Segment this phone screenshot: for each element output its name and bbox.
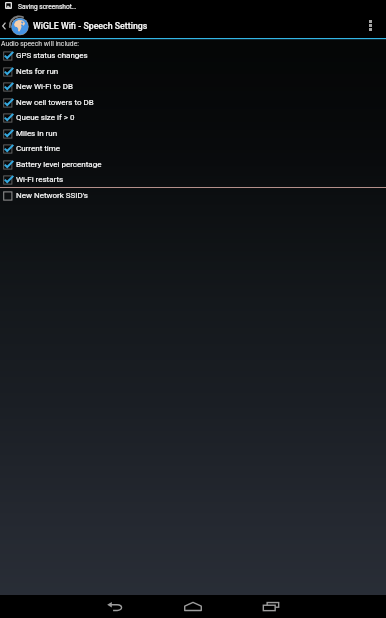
staticText: New Network SSID's [16, 191, 88, 200]
button[interactable]: New cell towers to DB [0, 96, 386, 112]
button[interactable]: Back [95, 595, 135, 618]
staticText: Audio speech will include: [1, 40, 79, 48]
staticText: Battery level percentage [16, 160, 102, 169]
staticText: New Wi-Fi to DB [16, 82, 73, 91]
button[interactable]: New Wi-Fi to DB [0, 80, 386, 96]
staticText: Queue size if > 0 [16, 113, 75, 122]
staticText: GPS status changes [16, 51, 88, 60]
button[interactable]: GPS status changes [0, 49, 386, 65]
button[interactable]: Wi-Fi restarts [0, 173, 386, 189]
button[interactable]: Current time [0, 142, 386, 158]
button[interactable]: Nets for run [0, 65, 386, 81]
button[interactable]: Home [173, 595, 213, 618]
button[interactable]: Queue size if > 0 [0, 111, 386, 127]
button[interactable]: Battery level percentage [0, 158, 386, 174]
button[interactable]: More options [358, 13, 382, 38]
staticText: Saving screenshot… [18, 3, 77, 11]
button[interactable]: Navigate up [0, 17, 8, 35]
button[interactable]: New Network SSID's [0, 189, 386, 205]
button[interactable]: Miles in run [0, 127, 386, 143]
staticText: Wi-Fi restarts [16, 175, 64, 184]
staticText: New cell towers to DB [16, 98, 94, 107]
staticText: Nets for run [16, 67, 59, 76]
staticText: Current time [16, 144, 61, 153]
staticText: WiGLE Wifi - Speech Settings [33, 21, 148, 31]
staticText: Miles in run [16, 129, 58, 138]
button[interactable]: Recent apps [251, 595, 291, 618]
